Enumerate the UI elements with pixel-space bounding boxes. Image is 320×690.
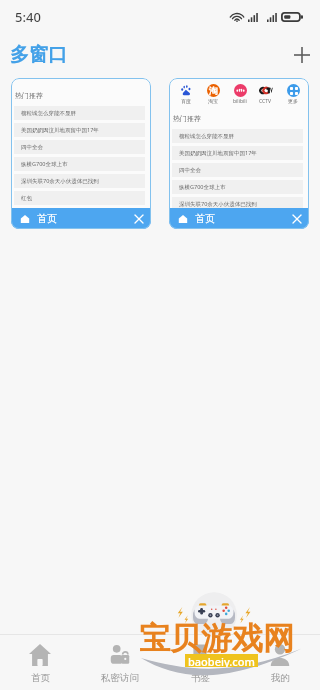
button[interactable]: 私密访问 [80,635,160,690]
staticText: 红包 [21,195,32,202]
staticText: 百度 [181,98,191,104]
staticText: 多窗口 [10,43,67,67]
staticText: bilibili [233,98,247,105]
staticText: 书签 [191,672,210,684]
staticText: 5:40 [15,8,41,26]
staticText: 热门推荐 [173,114,201,123]
button[interactable]: bilibili [229,83,250,105]
button[interactable]: 百度 [169,78,309,229]
button[interactable]: 淘 [202,83,223,104]
staticText: 四中全会 [179,167,201,174]
button[interactable]: 热门推荐 [11,78,151,229]
staticText: 首页 [31,672,50,684]
button[interactable]: 百度 [175,83,196,104]
staticText: 深圳失联70余天小伙遗体已找到 [21,177,99,185]
staticText: 榴粒城怎么穿能不显胖 [179,133,234,140]
staticText: 四中全会 [21,144,43,151]
staticText: 深圳失联70余天小伙遗体已找到 [179,200,257,208]
staticText: CCTV [259,98,272,105]
button[interactable]: Close window [129,209,149,229]
staticText: 首页 [37,212,57,225]
button[interactable]: 书签 [160,635,240,690]
button[interactable]: 我的 [240,635,320,690]
button[interactable]: 首页 [11,208,151,229]
staticText: 纵横G700全球上市 [179,183,226,191]
button[interactable]: Close window [287,209,307,229]
staticText: 美国奶奶因汶川地震留中国17年 [179,149,257,157]
button[interactable]: Add window [287,40,317,70]
staticText: 淘 [209,85,218,96]
staticText: 红包 [179,218,190,225]
staticText: 纵横G700全球上市 [21,160,68,168]
staticText: 我的 [271,672,290,684]
staticText: 热门推荐 [15,91,43,100]
button[interactable]: 首页 [0,635,80,690]
staticText: 淘宝 [208,98,218,104]
button[interactable]: CCTV [255,83,276,105]
staticText: 榴粒城怎么穿能不显胖 [21,110,76,117]
staticText: 美国奶奶因汶川地震留中国17年 [21,126,99,134]
staticText: 更多 [288,98,298,104]
staticText: baobeiy.com [188,654,255,667]
button[interactable]: 首页 [169,208,309,229]
button[interactable]: 更多 [282,83,303,104]
staticText: 宝贝游戏网 [139,619,294,658]
staticText: 私密访问 [101,672,139,684]
staticText: 首页 [195,212,215,225]
